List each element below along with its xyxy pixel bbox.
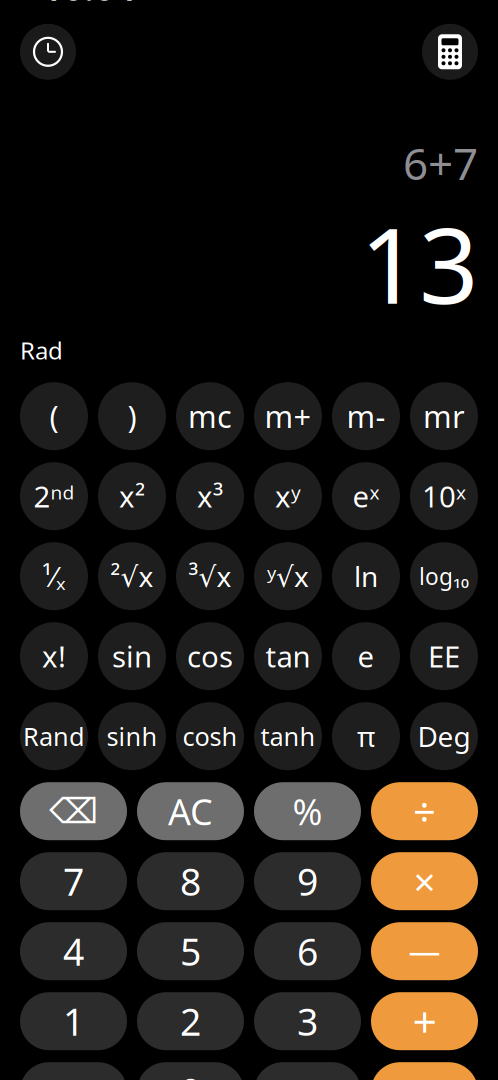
button[interactable]: Rand [20, 702, 88, 770]
staticText: 1 [63, 996, 84, 1046]
staticText: ⌫ [49, 791, 98, 831]
button[interactable]: mr [410, 382, 478, 450]
button[interactable]: Calculator mode [422, 24, 478, 80]
staticText: — [408, 930, 440, 972]
staticText: 10:04 [42, 0, 136, 11]
staticText: 6+7 [403, 134, 478, 192]
button[interactable]: e [332, 622, 400, 690]
button[interactable]: 7 [20, 852, 127, 910]
button[interactable]: ⁺⁄₋ [20, 1062, 127, 1080]
button[interactable]: 1 [20, 992, 127, 1050]
button[interactable]: ¹⁄ₓ [20, 542, 88, 610]
button[interactable]: + [371, 992, 478, 1050]
staticText: sin [112, 637, 152, 676]
button[interactable]: ²√x [98, 542, 166, 610]
staticText: ²√x [110, 558, 153, 595]
button[interactable]: ʸ√x [254, 542, 322, 610]
staticText: 7 [63, 856, 84, 906]
button[interactable]: tan [254, 622, 322, 690]
staticText: 0 [180, 1066, 201, 1080]
staticText: Deg [417, 718, 470, 755]
staticText: m- [346, 396, 385, 436]
staticText: ( [49, 396, 58, 436]
staticText: cosh [182, 719, 237, 753]
button[interactable]: x³ [176, 462, 244, 530]
button[interactable]: ³√x [176, 542, 244, 610]
staticText: ³√x [188, 558, 231, 595]
button[interactable]: ln [332, 542, 400, 610]
button[interactable]: AC [137, 782, 244, 840]
button[interactable]: 10ˣ [410, 462, 478, 530]
staticText: EE [428, 637, 460, 676]
button[interactable]: sin [98, 622, 166, 690]
button[interactable]: EE [410, 622, 478, 690]
button[interactable]: 2 [137, 992, 244, 1050]
button[interactable]: tanh [254, 702, 322, 770]
staticText: 6 [297, 926, 318, 976]
button[interactable]: ( [20, 382, 88, 450]
staticText: 5 [180, 926, 201, 976]
staticText: ln [354, 558, 378, 595]
button[interactable]: mc [176, 382, 244, 450]
staticText: 8 [180, 856, 201, 906]
button[interactable]: ⌫ [20, 782, 127, 840]
button[interactable]: cosh [176, 702, 244, 770]
button[interactable]: × [371, 852, 478, 910]
staticText: ¹⁄ₓ [42, 558, 66, 595]
staticText: x! [42, 637, 66, 676]
button[interactable]: log₁₀ [410, 542, 478, 610]
button[interactable]: x² [98, 462, 166, 530]
staticText: Rand [23, 719, 85, 753]
button[interactable]: 6 [254, 922, 361, 980]
button[interactable]: ) [98, 382, 166, 450]
staticText: π [357, 718, 375, 755]
staticText: eˣ [352, 477, 379, 516]
staticText: xʸ [275, 477, 301, 516]
staticText: % [292, 787, 322, 835]
button[interactable]: 3 [254, 992, 361, 1050]
button[interactable]: π [332, 702, 400, 770]
staticText: 2ⁿᵈ [33, 477, 74, 516]
staticText: Rad [20, 334, 63, 366]
button[interactable]: Deg [410, 702, 478, 770]
button[interactable]: x! [20, 622, 88, 690]
button[interactable]: ÷ [371, 782, 478, 840]
button[interactable]: 2ⁿᵈ [20, 462, 88, 530]
staticText: ʸ√x [267, 558, 309, 595]
staticText: × [413, 855, 435, 907]
staticText: tanh [260, 719, 315, 753]
button[interactable]: xʸ [254, 462, 322, 530]
staticText: sinh [106, 719, 157, 753]
button[interactable]: 0 [137, 1062, 244, 1080]
button[interactable]: m+ [254, 382, 322, 450]
button[interactable]: = [371, 1062, 478, 1080]
staticText: x³ [197, 477, 223, 516]
button[interactable]: — [371, 922, 478, 980]
staticText: e [357, 637, 374, 676]
staticText: 9 [297, 856, 318, 906]
staticText: ÷ [413, 785, 436, 838]
staticText: 4 [63, 926, 84, 976]
staticText: m+ [264, 396, 311, 436]
staticText: log₁₀ [419, 561, 469, 591]
button[interactable]: eˣ [332, 462, 400, 530]
staticText: cos [187, 637, 233, 676]
staticText: 13 [360, 194, 478, 332]
button[interactable]: 9 [254, 852, 361, 910]
button[interactable]: m- [332, 382, 400, 450]
button[interactable]: . [254, 1062, 361, 1080]
button[interactable]: 8 [137, 852, 244, 910]
button[interactable]: 4 [20, 922, 127, 980]
button[interactable]: % [254, 782, 361, 840]
button[interactable]: History [20, 24, 76, 80]
staticText: AC [168, 787, 213, 835]
staticText: + [412, 993, 436, 1050]
button[interactable]: 5 [137, 922, 244, 980]
button[interactable]: sinh [98, 702, 166, 770]
staticText: mc [188, 396, 232, 436]
staticText: 2 [180, 996, 201, 1046]
button[interactable]: cos [176, 622, 244, 690]
